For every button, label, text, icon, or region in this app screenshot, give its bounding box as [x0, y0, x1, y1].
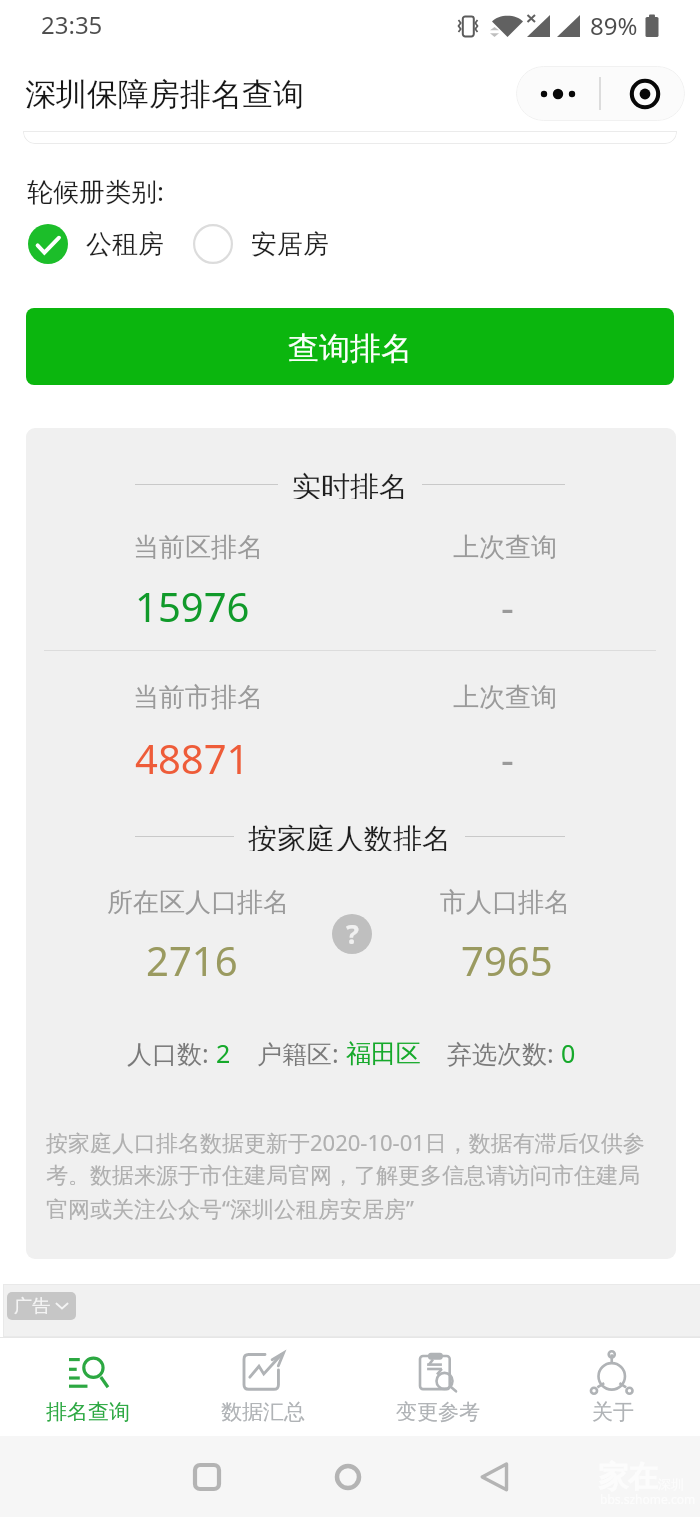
staticText: 深圳保障房排名查询 [25, 75, 304, 114]
staticText: - [501, 579, 514, 633]
staticText: 按家庭人数排名 [248, 821, 451, 851]
staticText: 福田区 [346, 1038, 421, 1069]
staticText: 当前市排名 [133, 681, 263, 714]
staticText: 市人口排名 [440, 886, 570, 919]
staticText: 查询排名 [288, 329, 412, 368]
button[interactable]: 关闭 [604, 66, 685, 121]
button[interactable]: 查询排名 [26, 308, 674, 385]
staticText: 上次查询 [453, 681, 557, 714]
button[interactable]: 安居房 [193, 224, 329, 264]
staticText: - [501, 731, 514, 785]
staticText: 变更参考 [396, 1399, 480, 1425]
staticText: 2716 [146, 933, 238, 987]
staticText: 安居房 [251, 228, 329, 261]
button[interactable]: 帮助 [332, 914, 372, 954]
button[interactable]: 广告 [7, 1292, 76, 1320]
button[interactable]: 关于 [525, 1337, 700, 1436]
staticText: ? [346, 915, 359, 952]
staticText: 公租房 [86, 228, 164, 261]
staticText: 关于 [592, 1399, 634, 1425]
staticText: 轮候册类别: [27, 173, 164, 209]
staticText: 广告 [14, 1295, 50, 1318]
staticText: 0 [561, 1036, 576, 1070]
staticText: 2 [216, 1036, 231, 1070]
button[interactable]: 最近任务 [179, 1436, 235, 1517]
staticText: 排名查询 [46, 1399, 130, 1425]
button[interactable]: 主页 [320, 1436, 376, 1517]
staticText: 按家庭人口排名数据更新于2020-10-01日，数据有滞后仅供参考。数据来源于市… [46, 1127, 646, 1223]
staticText: 当前区排名 [133, 531, 263, 564]
button[interactable]: 数据汇总 [175, 1337, 350, 1436]
button[interactable]: 更多 [516, 66, 600, 121]
staticText: 所在区人口排名 [107, 886, 289, 919]
button[interactable]: 公租房 [28, 224, 164, 264]
button[interactable]: 变更参考 [350, 1337, 525, 1436]
staticText: 人口数: [127, 1036, 216, 1070]
staticText: 15976 [135, 579, 250, 633]
staticText: 48871 [135, 731, 250, 785]
staticText: 7965 [461, 933, 553, 987]
staticText: 89% [590, 9, 638, 42]
staticText: 上次查询 [453, 531, 557, 564]
staticText: 户籍区: [257, 1036, 346, 1070]
button[interactable]: 返回 [466, 1436, 522, 1517]
button[interactable]: 排名查询 [0, 1337, 175, 1436]
staticText: 实时排名 [292, 469, 408, 499]
staticText: 23:35 [41, 8, 103, 41]
staticText: 数据汇总 [221, 1399, 305, 1425]
staticText: 弃选次数: [447, 1036, 561, 1070]
